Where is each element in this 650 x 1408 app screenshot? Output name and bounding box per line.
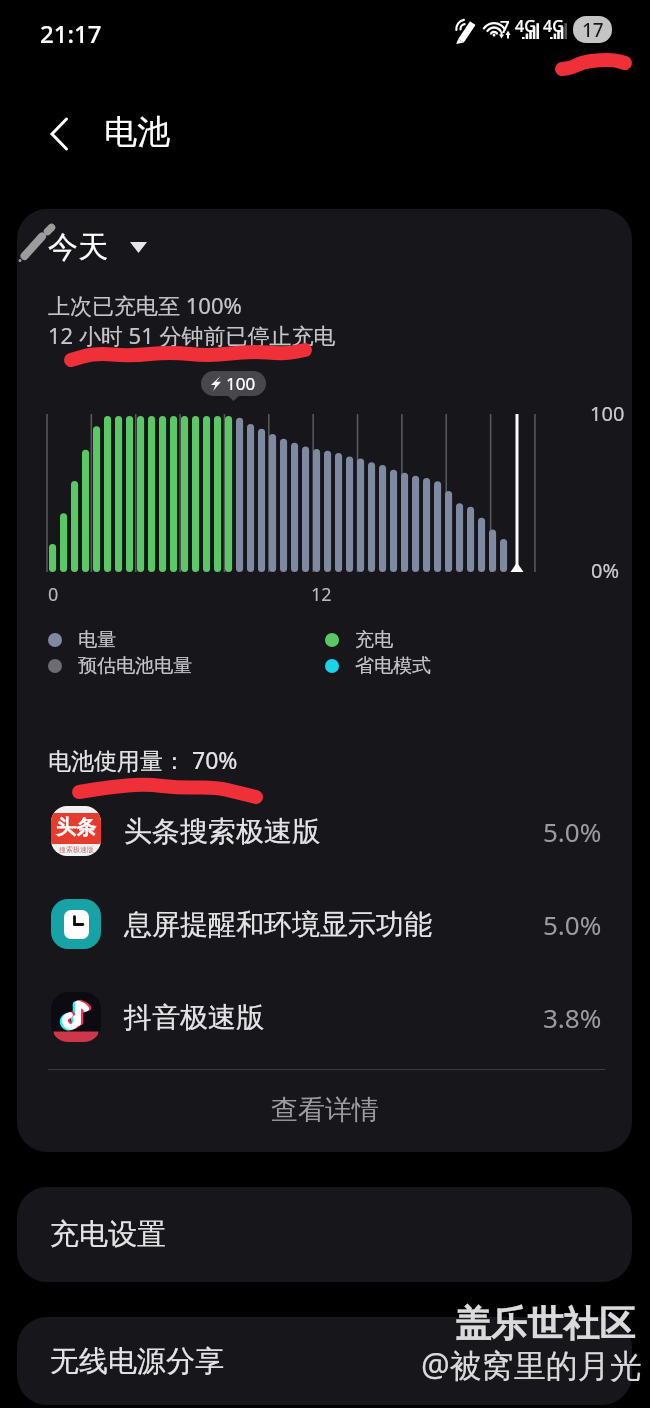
staticText: 无线电源分享 <box>50 1343 224 1380</box>
staticText: 今天 <box>48 228 108 266</box>
staticText: 4G <box>515 15 536 37</box>
staticText: 省电模式 <box>355 654 431 678</box>
button[interactable]: 息屏提醒和环境显示功能 <box>17 878 632 970</box>
staticText: 抖音极速版 <box>124 1000 543 1035</box>
staticText: 4G <box>543 15 564 37</box>
staticText: 充电 <box>355 628 393 652</box>
staticText: 0% <box>591 557 620 584</box>
staticText: 上次已充电至 100% <box>48 290 242 320</box>
staticText: 充电设置 <box>50 1216 166 1253</box>
button[interactable]: 头条 <box>17 785 632 877</box>
staticText: 息屏提醒和环境显示功能 <box>124 907 543 942</box>
staticText: 3.8% <box>543 1000 602 1035</box>
staticText: 12 <box>311 582 332 607</box>
staticText: 预估电池电量 <box>78 654 192 678</box>
staticText: 17 <box>582 17 604 43</box>
staticText: 5.0% <box>543 814 602 849</box>
staticText: 电池 <box>104 111 170 153</box>
staticText: 21:17 <box>40 17 102 50</box>
button[interactable]: Back <box>28 102 92 166</box>
staticText: 电池使用量： 70% <box>48 744 238 775</box>
button[interactable]: 抖音极速版 <box>17 971 632 1063</box>
button[interactable]: 无线电源分享 <box>17 1317 632 1405</box>
staticText: 100 <box>590 400 625 427</box>
staticText: 12 小时 51 分钟前已停止充电 <box>48 320 336 350</box>
staticText: 头条搜索极速版 <box>124 814 543 849</box>
staticText: 电量 <box>78 628 116 652</box>
button[interactable]: 今天 <box>48 228 147 266</box>
button[interactable]: 充电设置 <box>17 1187 632 1282</box>
staticText: 盖乐世社区 <box>455 1301 635 1346</box>
button[interactable]: 查看详情 <box>17 1070 632 1150</box>
staticText: @被窝里的月光 <box>421 1343 642 1387</box>
staticText: 查看详情 <box>271 1093 379 1127</box>
staticText: 0 <box>48 582 59 607</box>
staticText: 搜索极速版 <box>59 845 94 854</box>
staticText: 7 <box>500 15 510 38</box>
staticText: 5.0% <box>543 907 602 942</box>
staticText: 头条 <box>56 815 96 840</box>
staticText: 100 <box>226 372 256 395</box>
